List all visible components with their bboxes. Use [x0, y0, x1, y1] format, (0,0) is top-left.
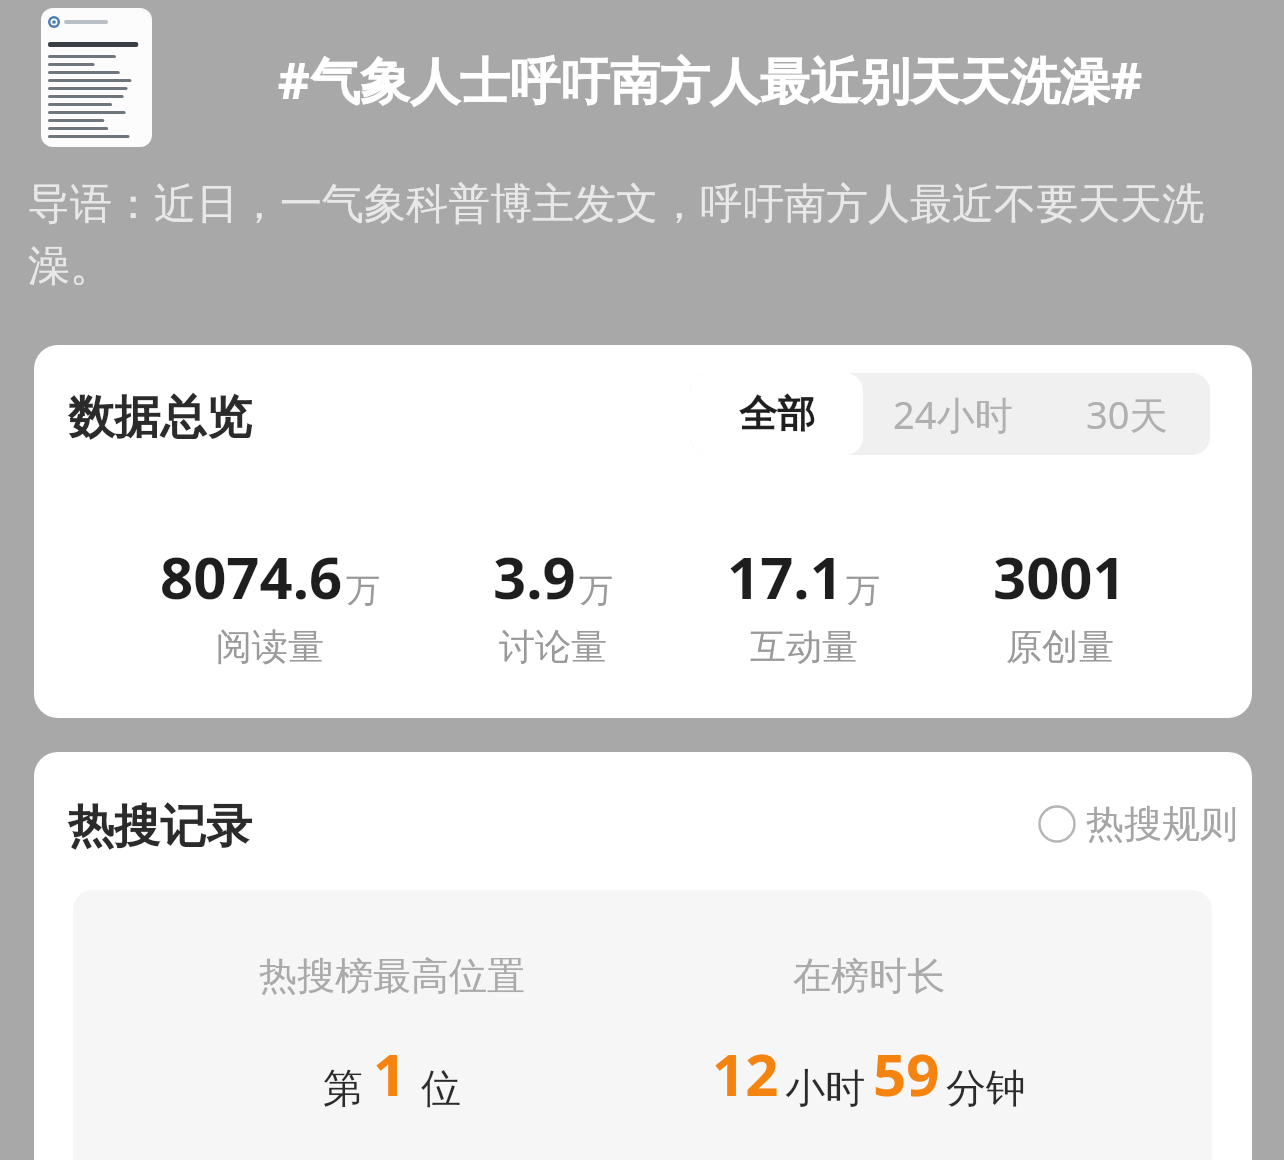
staticText: 讨论量 — [499, 624, 607, 669]
staticText: 8074.6 — [160, 537, 343, 616]
button[interactable]: 17.1 — [727, 537, 880, 669]
staticText: 万 — [579, 569, 613, 612]
button[interactable]: 全部 — [690, 373, 863, 455]
staticText: 全部 — [739, 390, 815, 438]
staticText: 万 — [846, 569, 880, 612]
staticText: #气象人士呼吁南方人最近别天天洗澡# — [180, 46, 1240, 114]
staticText: 第 — [323, 1063, 363, 1113]
staticText: 数据总览 — [68, 389, 252, 447]
staticText: 导语：近日，一气象科普博主发文，呼吁南方人最近不要天天洗澡。 — [28, 178, 1228, 293]
staticText: 59 — [873, 1034, 940, 1113]
button[interactable]: 24小时 — [863, 373, 1043, 455]
staticText: 12 — [712, 1034, 779, 1113]
button[interactable]: #气象人士呼吁南方人最近别天天洗澡# — [180, 46, 1240, 114]
staticText: 热搜榜最高位置 — [259, 952, 525, 1000]
staticText: 在榜时长 — [793, 952, 945, 1000]
staticText: 热搜记录 — [68, 798, 252, 856]
staticText: 17.1 — [727, 537, 843, 616]
staticText: 小时 — [785, 1063, 865, 1113]
staticText: 位 — [421, 1063, 461, 1113]
staticText: 万 — [346, 569, 380, 612]
button[interactable]: 3.9 — [493, 537, 613, 669]
button[interactable]: 原文配图 — [41, 8, 152, 147]
staticText: 原创量 — [1006, 624, 1114, 669]
staticText: 3001 — [993, 537, 1126, 616]
staticText: 24小时 — [893, 388, 1013, 440]
staticText: 阅读量 — [216, 624, 324, 669]
button[interactable]: 8074.6 — [160, 537, 380, 669]
staticText: 1 — [373, 1034, 407, 1113]
staticText: 热搜规则 — [1086, 800, 1238, 848]
button[interactable]: 30天 — [1043, 373, 1210, 455]
staticText: 分钟 — [946, 1063, 1026, 1113]
staticText: 30天 — [1086, 388, 1168, 440]
button[interactable]: 3001 — [993, 537, 1126, 669]
button[interactable]: 热搜规则 — [1034, 796, 1242, 852]
staticText: 互动量 — [750, 624, 858, 669]
staticText: 3.9 — [493, 537, 576, 616]
